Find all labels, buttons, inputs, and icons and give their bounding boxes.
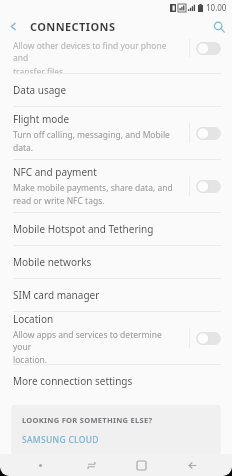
staticText: Mobile networks [13, 255, 92, 269]
staticText: Mobile Hotspot and Tethering [13, 222, 154, 236]
button[interactable]: Home [130, 454, 152, 476]
staticText: More connection settings [13, 374, 133, 388]
button[interactable]: Mobile Hotspot and Tethering [0, 213, 232, 245]
button[interactable]: SIM card manager [0, 279, 232, 311]
button[interactable]: Location [0, 312, 232, 364]
staticText: 10.00 [206, 2, 227, 13]
button[interactable]: Show buttons [29, 454, 51, 476]
staticText: Allow other devices to find your phone a… [13, 40, 173, 64]
button[interactable]: Data usage [0, 74, 232, 106]
staticText: Turn off calling, messaging, and Mobile [13, 129, 170, 141]
button[interactable]: Toggle [196, 332, 221, 345]
button[interactable]: Flight mode [0, 107, 232, 159]
button[interactable]: Search [206, 14, 232, 39]
staticText: transfer files. [13, 66, 66, 73]
staticText: CONNECTIONS [30, 19, 116, 34]
staticText: Data usage [13, 83, 67, 97]
button[interactable]: Back [181, 454, 203, 476]
staticText: SAMSUNG CLOUD [22, 434, 99, 444]
staticText: data. [13, 142, 34, 154]
button[interactable]: Toggle [196, 42, 221, 55]
button[interactable]: NFC and payment [0, 160, 232, 212]
staticText: Flight mode [13, 112, 70, 126]
button[interactable]: Toggle [196, 127, 221, 140]
button[interactable]: Back [0, 14, 26, 39]
staticText: Allow apps and services to determine you… [13, 329, 178, 353]
staticText: read or write NFC tags. [13, 195, 105, 207]
staticText: Make mobile payments, share data, and [13, 182, 173, 194]
staticText: SIM card manager [13, 288, 100, 302]
button[interactable]: LOOKING FOR SOMETHING ELSE? [11, 405, 221, 454]
staticText: location. [13, 354, 48, 364]
button[interactable]: More connection settings [0, 365, 232, 397]
staticText: LOOKING FOR SOMETHING ELSE? [22, 415, 153, 425]
button[interactable]: Recents [80, 454, 102, 476]
staticText: Location [13, 312, 54, 326]
button[interactable]: Toggle [196, 180, 221, 193]
button[interactable]: Mobile networks [0, 246, 232, 278]
staticText: NFC and payment [13, 165, 97, 179]
